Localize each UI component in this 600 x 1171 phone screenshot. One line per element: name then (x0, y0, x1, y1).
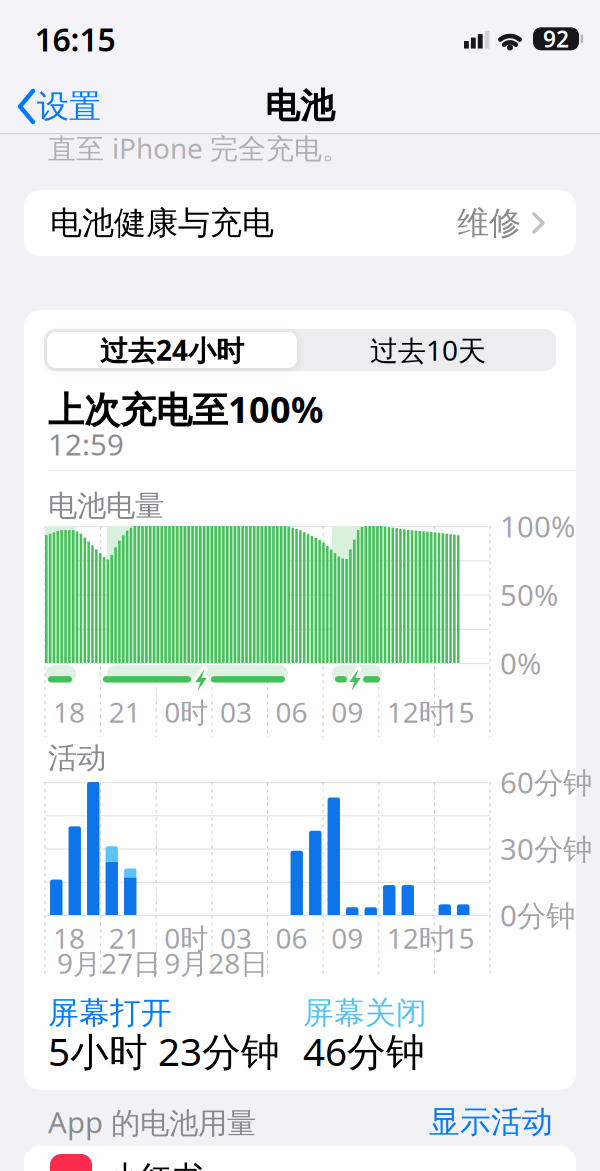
staticText: 03 (220, 919, 252, 957)
staticText: 100% (500, 506, 575, 545)
button[interactable]: 过去10天 (0, 0, 600, 1171)
staticText: 过去24小时 (100, 331, 244, 369)
staticText: 06 (275, 693, 307, 731)
staticText: 显示活动 (429, 1103, 553, 1141)
button[interactable]: 显示活动 (0, 0, 600, 1171)
button[interactable]: 返回设置 (16, 88, 126, 125)
staticText: 电池电量 (48, 488, 164, 524)
staticText: 18 (53, 693, 85, 731)
staticText: 46分钟 (303, 1025, 425, 1077)
staticText: 0分钟 (500, 895, 575, 934)
staticText: 0% (500, 643, 541, 682)
button[interactable]: 屏幕关闭 (0, 0, 600, 1171)
staticText: 60分钟 (500, 762, 592, 801)
staticText: 0时 (164, 919, 208, 957)
button[interactable]: 小红书 (0, 0, 600, 1171)
staticText: 电池健康与充电 (50, 203, 274, 243)
staticText: 小红书 (108, 1158, 204, 1171)
staticText: 30分钟 (500, 829, 592, 868)
staticText: 92 (543, 24, 569, 54)
staticText: 03 (220, 693, 252, 731)
staticText: 12时 (387, 693, 447, 731)
staticText: 09 (331, 919, 363, 957)
button[interactable]: 电池健康与充电 (0, 0, 600, 1171)
staticText: 活动 (48, 740, 106, 776)
staticText: 15 (442, 693, 474, 731)
staticText: 18 (53, 919, 85, 957)
staticText: 21 (109, 919, 141, 957)
staticText: 50% (500, 575, 558, 614)
staticText: 09 (331, 693, 363, 731)
staticText: 设置 (37, 87, 101, 126)
staticText: 5小时 23分钟 (48, 1025, 280, 1077)
staticText: App 的电池用量 (48, 1102, 256, 1141)
staticText: 9月28日 (164, 944, 268, 982)
staticText: 06 (275, 919, 307, 957)
staticText: 15 (442, 919, 474, 957)
staticText: 16:15 (34, 18, 115, 60)
staticText: 上次充电至100% (48, 385, 323, 433)
staticText: 屏幕关闭 (303, 994, 427, 1032)
staticText: 过去10天 (370, 331, 486, 369)
staticText: 12:59 (48, 424, 124, 463)
button[interactable]: 过去24小时 (0, 0, 600, 1171)
staticText: 维修 (457, 203, 521, 243)
staticText: 12时 (387, 919, 447, 957)
staticText: 电池 (265, 85, 335, 127)
staticText: 9月27日 (57, 944, 161, 982)
staticText: 屏幕打开 (48, 994, 172, 1032)
staticText: 直至 iPhone 完全充电。 (48, 129, 350, 167)
staticText: 21 (109, 693, 141, 731)
staticText: 0时 (164, 693, 208, 731)
button[interactable]: 屏幕打开 (0, 0, 600, 1171)
